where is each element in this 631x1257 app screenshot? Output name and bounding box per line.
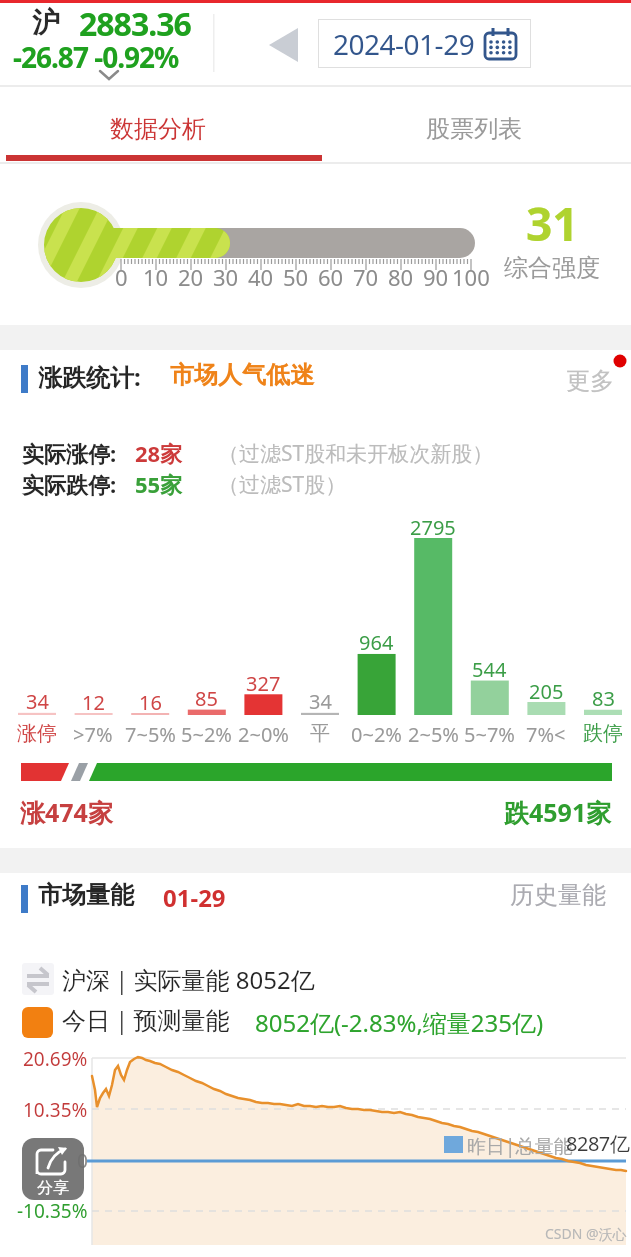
staticText: 20 [178, 262, 204, 292]
staticText: 40 [248, 262, 274, 292]
staticText: 01-29 [163, 881, 226, 914]
staticText: 平 [310, 721, 330, 746]
staticText: 0 [77, 1148, 88, 1174]
staticText: -10.35% [17, 1198, 88, 1224]
staticText: 市场人气低迷 [170, 360, 314, 390]
staticText: 327 [246, 670, 281, 697]
staticText: 8052亿(-2.83%,缩量235亿) [255, 1006, 544, 1039]
button[interactable]: 更多 [556, 360, 626, 400]
staticText: 历史量能 [510, 880, 606, 910]
staticText: 涨跌统计: [38, 360, 141, 393]
button[interactable]: 分享 [22, 1138, 84, 1200]
staticText: 8287亿 [566, 1130, 630, 1157]
staticText: 2~5% [408, 721, 459, 748]
staticText: 涨474家 [20, 795, 113, 829]
staticText: 7%< [526, 721, 566, 748]
button[interactable]: 数据分析 [0, 96, 315, 162]
staticText: （过滤ST股和未开板次新股） [218, 439, 494, 468]
staticText: 544 [472, 656, 507, 683]
staticText: 2883.36 [79, 2, 191, 46]
staticText: 数据分析 [110, 114, 206, 144]
staticText: 90 [423, 262, 449, 292]
staticText: 沪 [32, 5, 60, 40]
button[interactable]: 2024-01-29 [318, 19, 531, 68]
staticText: 12 [82, 689, 105, 716]
staticText: 市场量能 [38, 880, 134, 910]
button[interactable]: 历史量能 [505, 876, 617, 916]
button[interactable]: 股票列表 [316, 96, 631, 162]
staticText: 30 [213, 262, 239, 292]
staticText: 80 [388, 262, 414, 292]
staticText: 20.69% [23, 1046, 88, 1072]
staticText: 50 [283, 262, 309, 292]
staticText: 沪深｜实际量能 8052亿 [62, 963, 315, 996]
staticText: 2795 [410, 514, 456, 541]
staticText: 今日｜预测量能 [62, 1006, 230, 1036]
staticText: 28家 [135, 438, 183, 468]
staticText: 0~2% [351, 721, 402, 748]
staticText: 综合强度 [504, 253, 600, 283]
staticText: 7~5% [125, 721, 176, 748]
staticText: 实际涨停: [22, 438, 117, 468]
staticText: 0 [115, 262, 128, 292]
staticText: CSDN @沃心 [545, 1224, 627, 1243]
staticText: -26.87 -0.92% [13, 38, 179, 76]
staticText: 股票列表 [426, 114, 522, 144]
staticText: 5~2% [181, 721, 232, 748]
staticText: 70 [353, 262, 379, 292]
staticText: 10.35% [23, 1097, 88, 1123]
staticText: 跌停 [583, 721, 623, 746]
staticText: 83 [592, 685, 615, 712]
staticText: 55家 [135, 469, 183, 499]
staticText: 更多 [566, 366, 614, 396]
staticText: 涨停 [17, 721, 57, 746]
staticText: 34 [309, 688, 332, 715]
staticText: 34 [26, 688, 49, 715]
staticText: 10 [143, 262, 169, 292]
staticText: 85 [195, 685, 218, 712]
staticText: 昨日|总量能 [467, 1133, 573, 1159]
staticText: 分享 [37, 1178, 69, 1198]
staticText: 100 [452, 262, 490, 292]
staticText: >7% [73, 721, 113, 748]
staticText: 2024-01-29 [333, 25, 475, 63]
staticText: 16 [139, 689, 162, 716]
staticText: 跌4591家 [504, 795, 612, 829]
button[interactable] [260, 20, 306, 70]
staticText: 964 [359, 629, 394, 656]
staticText: 5~7% [464, 721, 515, 748]
staticText: 2~0% [238, 721, 289, 748]
staticText: 31 [526, 192, 579, 255]
staticText: 205 [529, 678, 564, 705]
staticText: （过滤ST股） [218, 470, 347, 499]
staticText: 60 [318, 262, 344, 292]
staticText: 实际跌停: [22, 469, 117, 499]
